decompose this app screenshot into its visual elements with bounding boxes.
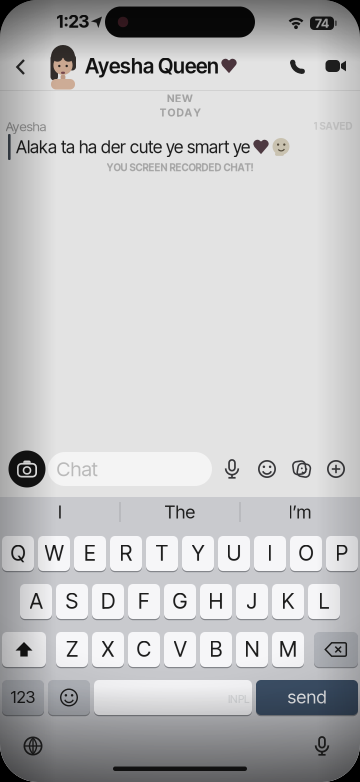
button[interactable]: Space — [94, 680, 252, 716]
button[interactable]: H — [200, 584, 232, 620]
staticText: Ayesha Queen — [85, 53, 219, 78]
button[interactable]: B — [200, 632, 232, 668]
button[interactable]: J — [236, 584, 268, 620]
staticText: L — [318, 588, 329, 614]
staticText: 74 — [315, 15, 329, 31]
button[interactable]: Delete — [314, 632, 358, 668]
button[interactable]: Emoji keyboard — [48, 680, 90, 716]
staticText: M — [279, 636, 297, 662]
button[interactable]: D — [92, 584, 124, 620]
staticText: Ayesha — [5, 118, 46, 134]
staticText: D — [101, 588, 115, 614]
staticText: B — [209, 636, 222, 662]
staticText: T O D A Y — [159, 106, 200, 119]
staticText: V — [173, 636, 186, 662]
staticText: G — [172, 588, 187, 614]
staticText: Chat — [56, 457, 97, 481]
staticText: O — [298, 540, 313, 566]
staticText: J — [246, 588, 257, 614]
staticText: Alaka ta ha der cute ye smart ye — [16, 136, 250, 157]
staticText: Q — [10, 540, 25, 566]
staticText: N E W — [167, 92, 193, 105]
button[interactable]: Chat text field — [48, 452, 212, 486]
button[interactable]: I — [254, 536, 286, 572]
button[interactable]: K — [272, 584, 304, 620]
staticText: I’m — [288, 501, 311, 523]
staticText: A — [29, 588, 42, 614]
button[interactable]: Dictation — [309, 733, 335, 759]
staticText: S — [65, 588, 78, 614]
button[interactable]: send — [256, 680, 358, 716]
staticText: P — [335, 540, 348, 566]
button[interactable]: Video call — [322, 53, 350, 79]
button[interactable]: P — [326, 536, 358, 572]
button[interactable]: Switch keyboard — [20, 733, 46, 759]
staticText: E — [84, 540, 96, 566]
staticText: T — [155, 540, 168, 566]
staticText: I — [267, 540, 272, 566]
staticText: I — [58, 501, 62, 523]
staticText: X — [101, 636, 114, 662]
staticText: Z — [66, 636, 78, 662]
staticText: R — [119, 540, 132, 566]
button[interactable]: Shift — [2, 632, 46, 668]
button[interactable]: Profile — [45, 45, 81, 89]
button[interactable]: G — [164, 584, 196, 620]
staticText: F — [138, 588, 150, 614]
button[interactable]: S — [56, 584, 88, 620]
button[interactable]: V — [164, 632, 196, 668]
button[interactable]: 123 — [2, 680, 44, 716]
button[interactable]: Voice note — [220, 457, 244, 481]
button[interactable]: I’m — [270, 497, 330, 527]
staticText: The — [164, 501, 195, 523]
button[interactable]: L — [308, 584, 340, 620]
button[interactable]: Y — [182, 536, 214, 572]
button[interactable]: R — [110, 536, 142, 572]
button[interactable]: X — [92, 632, 124, 668]
button[interactable]: Emoji — [255, 457, 279, 481]
button[interactable]: O — [290, 536, 322, 572]
button[interactable]: C — [128, 632, 160, 668]
staticText: H — [208, 588, 223, 614]
staticText: W — [44, 540, 63, 566]
button[interactable]: Camera — [8, 450, 45, 487]
staticText: Y O U S C R E E N R E C O R D E D C H A … — [106, 161, 253, 174]
button[interactable]: M — [272, 632, 304, 668]
button[interactable]: Stickers — [289, 457, 313, 481]
staticText: 1:23 — [56, 11, 89, 32]
staticText: N — [244, 636, 259, 662]
button[interactable]: Z — [56, 632, 88, 668]
staticText: K — [281, 588, 294, 614]
button[interactable]: More — [324, 457, 348, 481]
button[interactable]: W — [38, 536, 70, 572]
button[interactable]: I — [30, 497, 90, 527]
staticText: C — [136, 636, 151, 662]
staticText: send — [287, 686, 326, 708]
button[interactable]: E — [74, 536, 106, 572]
staticText: INPL — [228, 692, 250, 705]
staticText: U — [226, 540, 241, 566]
staticText: 123 — [10, 687, 35, 707]
button[interactable]: Back — [6, 52, 36, 82]
button[interactable]: Call — [286, 53, 312, 79]
button[interactable]: F — [128, 584, 160, 620]
staticText: 1 S A V E D — [313, 120, 352, 132]
staticText: Y — [191, 540, 204, 566]
button[interactable]: N — [236, 632, 268, 668]
button[interactable]: Q — [2, 536, 34, 572]
button[interactable]: T — [146, 536, 178, 572]
button[interactable]: The — [150, 497, 210, 527]
button[interactable]: A — [20, 584, 52, 620]
button[interactable]: U — [218, 536, 250, 572]
